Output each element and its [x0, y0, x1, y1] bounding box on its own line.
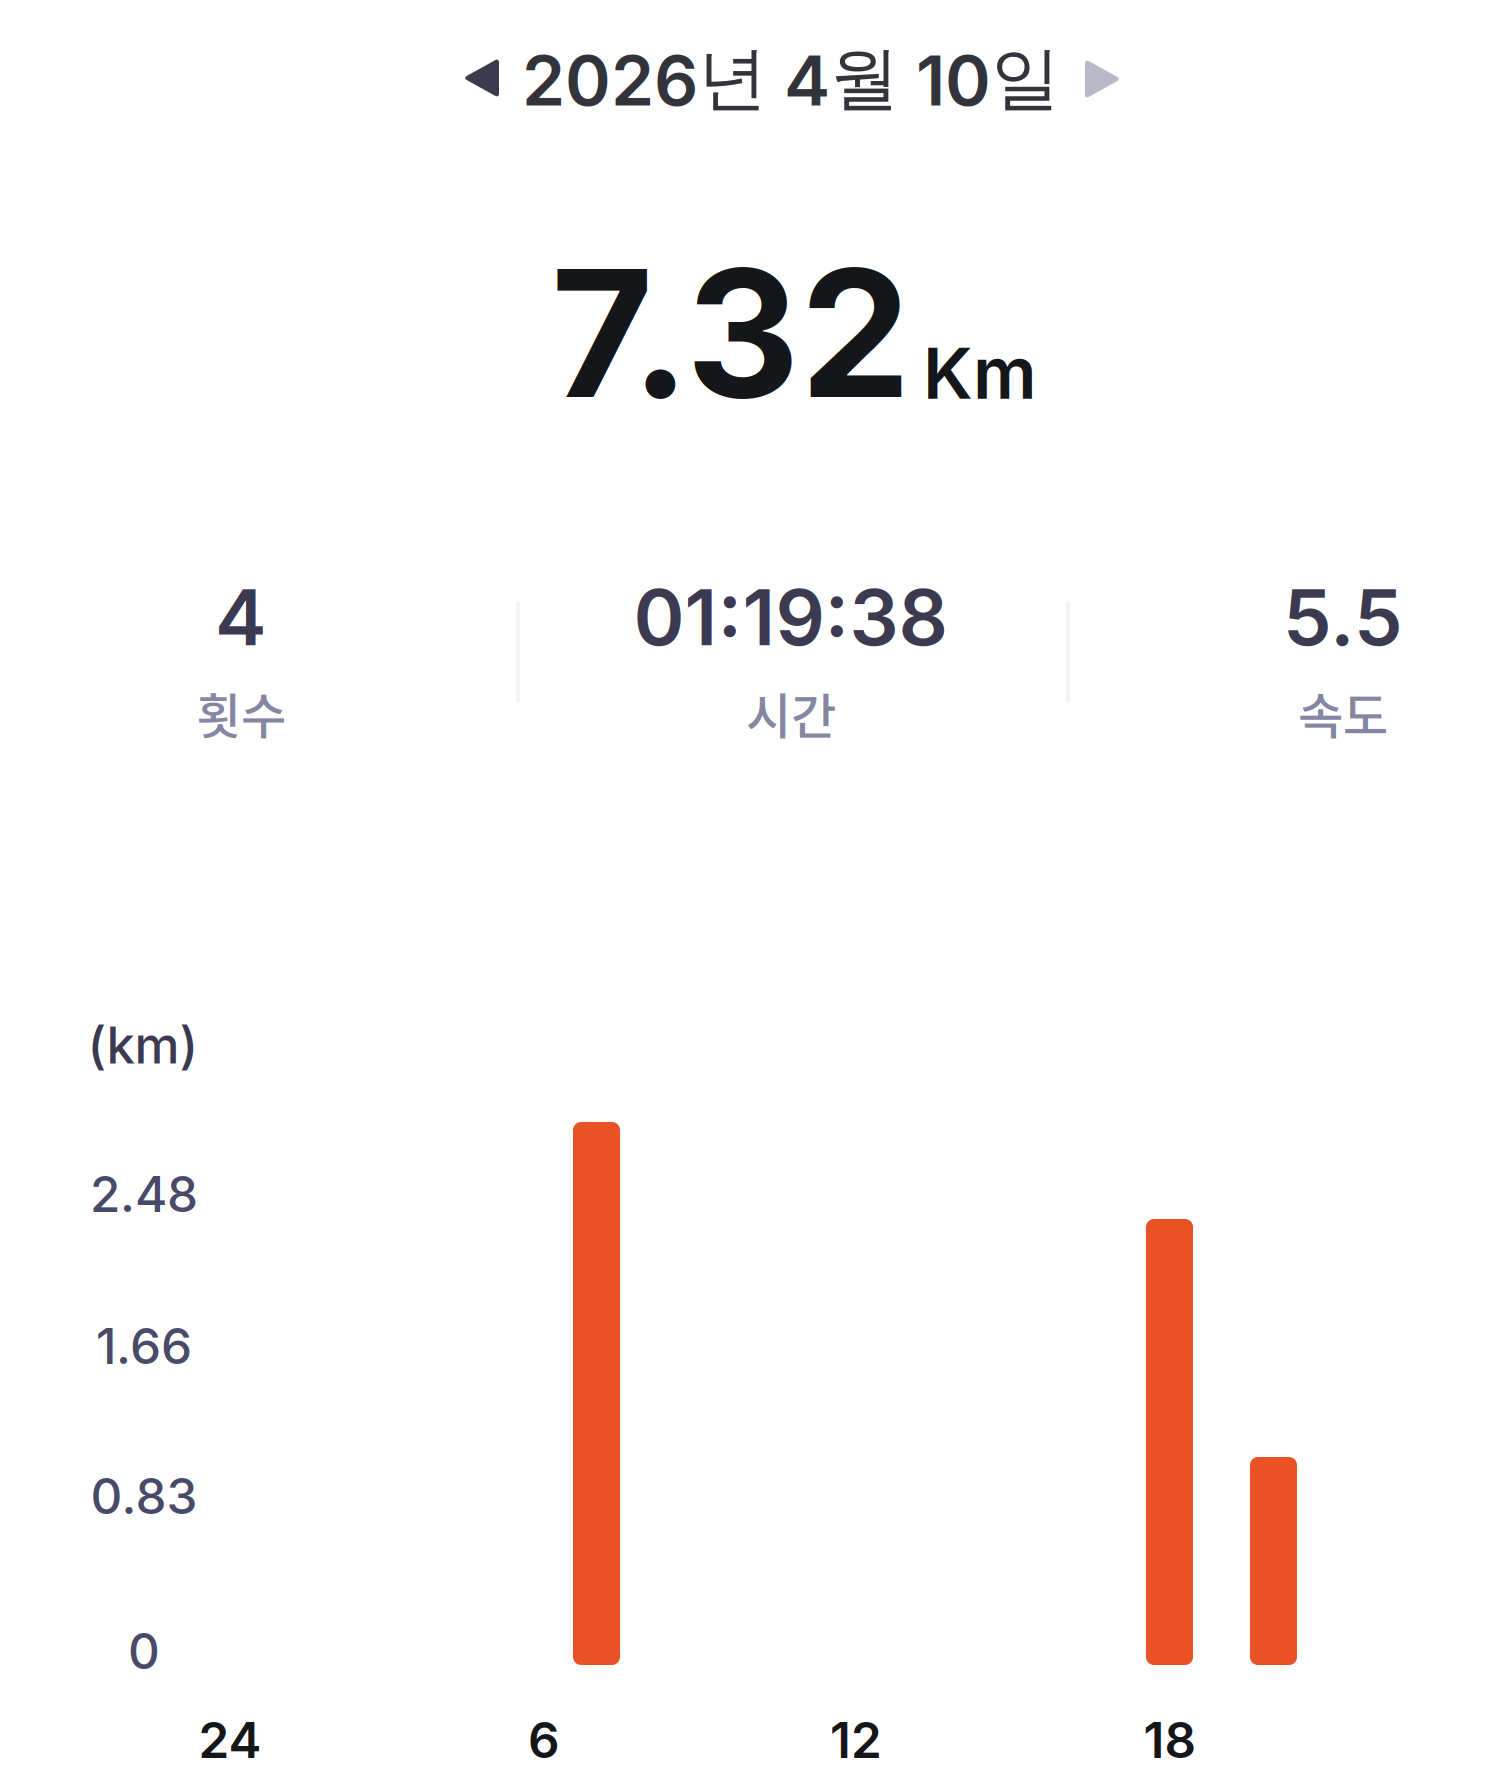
staticText: 0.83 [90, 1466, 197, 1526]
staticText: 횟수 [196, 677, 286, 749]
staticText: 시간 [746, 677, 836, 749]
staticText: 01:19:38 [633, 570, 948, 664]
staticText: 7.32 [551, 226, 911, 439]
staticText: 24 [198, 1710, 261, 1770]
staticText: 4 [215, 570, 267, 664]
staticText: 1.66 [96, 1316, 192, 1376]
button[interactable]: Next day [1063, 37, 1143, 121]
staticText: 2026년 4월 10일 [522, 35, 1060, 123]
button[interactable]: Previous day [441, 36, 521, 120]
staticText: 속도 [1298, 677, 1388, 749]
staticText: (km) [87, 1014, 198, 1076]
staticText: 18 [1143, 1710, 1196, 1770]
staticText: 5.5 [1283, 570, 1403, 664]
staticText: 12 [830, 1710, 882, 1770]
staticText: Km [923, 330, 1037, 416]
staticText: 0 [128, 1621, 160, 1681]
staticText: 2.48 [90, 1164, 198, 1224]
staticText: 6 [528, 1710, 560, 1770]
